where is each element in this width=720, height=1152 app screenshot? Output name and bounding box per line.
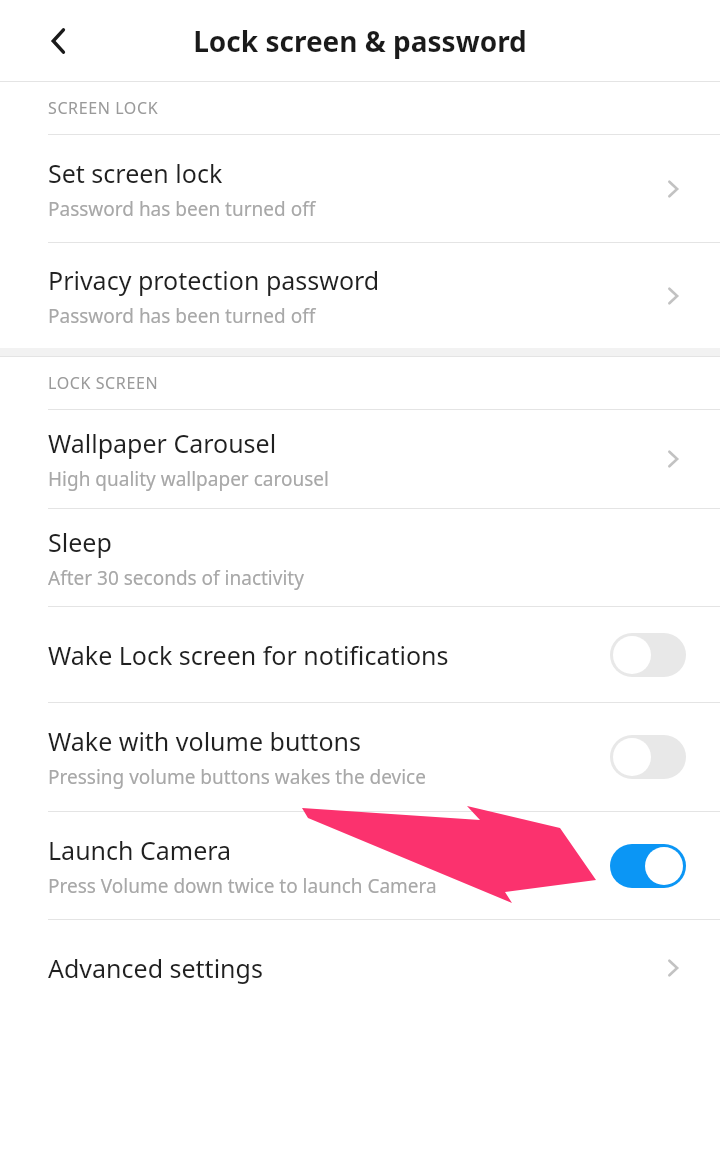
staticText: High quality wallpaper carousel <box>48 466 329 492</box>
button[interactable]: Set screen lock <box>0 135 720 242</box>
button[interactable] <box>610 844 686 888</box>
button[interactable]: Advanced settings <box>0 920 720 1016</box>
staticText: Press Volume down twice to launch Camera <box>48 873 437 899</box>
staticText: Pressing volume buttons wakes the device <box>48 764 426 790</box>
staticText: Advanced settings <box>48 951 263 985</box>
staticText: Password has been turned off <box>48 303 316 329</box>
staticText: Launch Camera <box>48 833 232 867</box>
button[interactable]: Wake Lock screen for notifications <box>0 607 720 702</box>
button[interactable] <box>610 633 686 677</box>
staticText: Password has been turned off <box>48 196 316 222</box>
button[interactable]: Privacy protection password <box>0 243 720 348</box>
staticText: Wallpaper Carousel <box>48 426 277 460</box>
button[interactable]: Wake with volume buttons <box>0 703 720 811</box>
button[interactable]: Sleep <box>0 509 720 606</box>
staticText: SCREEN LOCK <box>48 97 159 119</box>
staticText: Wake with volume buttons <box>48 724 361 758</box>
staticText: Lock screen & password <box>193 22 527 60</box>
staticText: Wake Lock screen for notifications <box>48 638 449 672</box>
staticText: Set screen lock <box>48 156 223 190</box>
button[interactable]: Back <box>28 10 90 72</box>
button[interactable] <box>610 735 686 779</box>
button[interactable]: Wallpaper Carousel <box>0 410 720 508</box>
staticText: Privacy protection password <box>48 263 380 297</box>
staticText: After 30 seconds of inactivity <box>48 565 304 591</box>
staticText: LOCK SCREEN <box>48 372 159 394</box>
button[interactable]: Launch Camera <box>0 812 720 919</box>
staticText: Sleep <box>48 525 112 559</box>
